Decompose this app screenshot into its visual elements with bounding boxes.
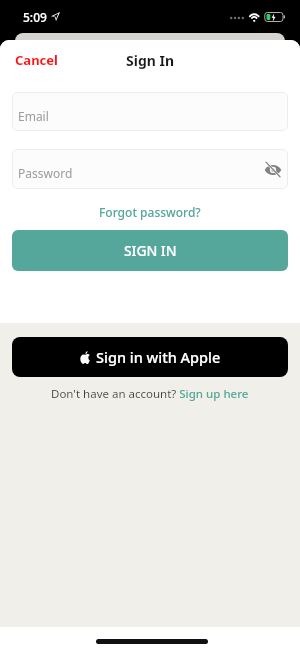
button[interactable]: Forgot password? [95,200,205,224]
staticText: Sign in with Apple [96,347,221,367]
button[interactable]: Password [12,149,288,189]
staticText: 5:09 [23,9,47,25]
button[interactable]: Sign in with Apple [12,337,288,377]
button[interactable]: SIGN IN [12,230,288,271]
staticText: Cancel [15,51,58,69]
staticText: Sign In [126,51,175,70]
button[interactable]: Show password [258,150,288,188]
staticText: Password [18,165,73,181]
staticText: Don't have an account? Sign up here [51,386,249,402]
button[interactable]: Cancel [0,47,73,73]
staticText: SIGN IN [124,241,177,260]
staticText: Email [18,108,49,124]
button[interactable]: Don't have an account? Sign up here [51,386,249,402]
staticText: Forgot password? [99,204,201,220]
button[interactable]: Email [12,92,288,131]
